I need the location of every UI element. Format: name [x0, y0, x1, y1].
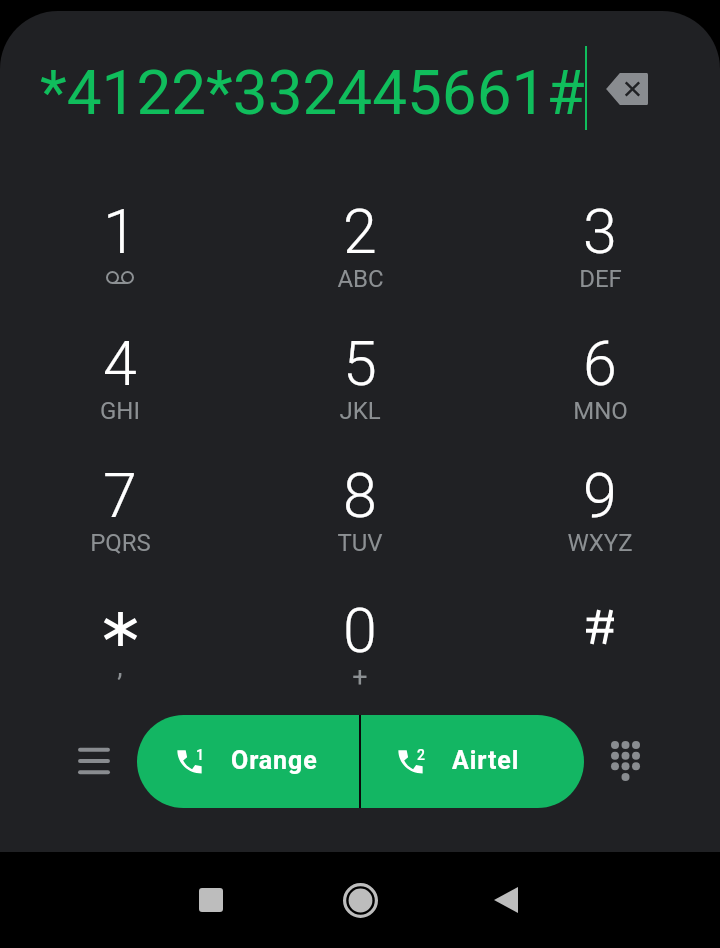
staticText: 1: [103, 196, 137, 264]
button[interactable]: 5: [240, 325, 480, 457]
button[interactable]: 7: [0, 457, 240, 589]
staticText: GHI: [100, 397, 140, 425]
button[interactable]: Back: [474, 868, 538, 932]
staticText: 6: [583, 328, 617, 396]
button[interactable]: 1: [137, 715, 359, 808]
button[interactable]: Keypad: [600, 736, 650, 786]
button[interactable]: Recents: [179, 868, 243, 932]
staticText: 2: [417, 747, 425, 763]
staticText: *4122*332445661#: [40, 56, 585, 129]
staticText: ABC: [337, 265, 384, 293]
button[interactable]: [480, 589, 720, 721]
staticText: 9: [583, 460, 617, 528]
staticText: 5: [343, 328, 377, 396]
button[interactable]: ,: [0, 589, 240, 721]
button[interactable]: Backspace: [599, 61, 655, 117]
button[interactable]: 9: [480, 457, 720, 589]
staticText: TUV: [337, 529, 383, 557]
button[interactable]: 4: [0, 325, 240, 457]
staticText: 3: [583, 196, 617, 264]
button[interactable]: 6: [480, 325, 720, 457]
staticText: JKL: [339, 397, 381, 425]
button[interactable]: Home: [328, 868, 392, 932]
staticText: WXYZ: [567, 529, 633, 557]
staticText: Airtel: [452, 746, 520, 775]
button[interactable]: 0: [240, 589, 480, 721]
button[interactable]: 1: [0, 193, 240, 325]
button[interactable]: 2: [361, 715, 584, 808]
staticText: 2: [343, 196, 377, 264]
button[interactable]: More options: [69, 736, 119, 786]
button[interactable]: 2: [240, 193, 480, 325]
staticText: 8: [343, 460, 377, 528]
staticText: PQRS: [90, 529, 151, 557]
staticText: +: [352, 661, 368, 693]
button[interactable]: 3: [480, 193, 720, 325]
staticText: MNO: [573, 397, 628, 425]
staticText: 4: [103, 328, 137, 396]
staticText: Orange: [231, 746, 318, 775]
staticText: 0: [343, 595, 377, 663]
staticText: 1: [196, 747, 204, 763]
staticText: DEF: [579, 265, 622, 293]
button[interactable]: 8: [240, 457, 480, 589]
staticText: 7: [103, 460, 137, 528]
staticText: ,: [117, 651, 123, 683]
